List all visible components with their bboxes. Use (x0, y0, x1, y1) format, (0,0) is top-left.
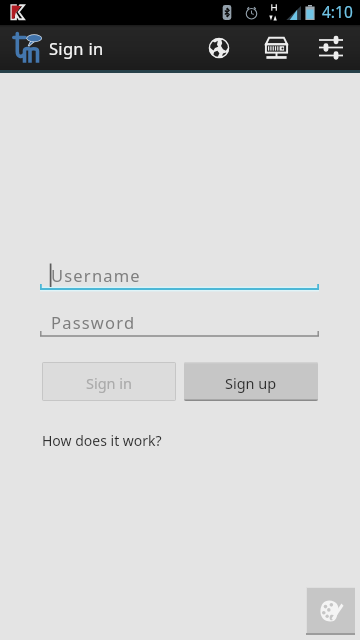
staticText: Sign in (86, 373, 133, 393)
button[interactable]: Change theme (306, 587, 355, 635)
staticText: 4:10 (322, 1, 353, 22)
staticText: Username (51, 264, 141, 286)
button[interactable]: Server settings (252, 25, 300, 70)
button[interactable]: How does it work? (38, 429, 166, 452)
button[interactable]: Choose language (195, 25, 243, 70)
button[interactable]: Settings (307, 25, 355, 70)
staticText: How does it work? (42, 431, 162, 450)
button[interactable]: Sign in (42, 362, 176, 401)
staticText: Sign up (225, 373, 277, 393)
button[interactable]: Password (40, 309, 319, 337)
staticText: Sign in (49, 37, 104, 59)
button[interactable]: Username (40, 262, 319, 290)
button[interactable]: Sign up (184, 362, 318, 401)
staticText: Password (51, 311, 136, 333)
